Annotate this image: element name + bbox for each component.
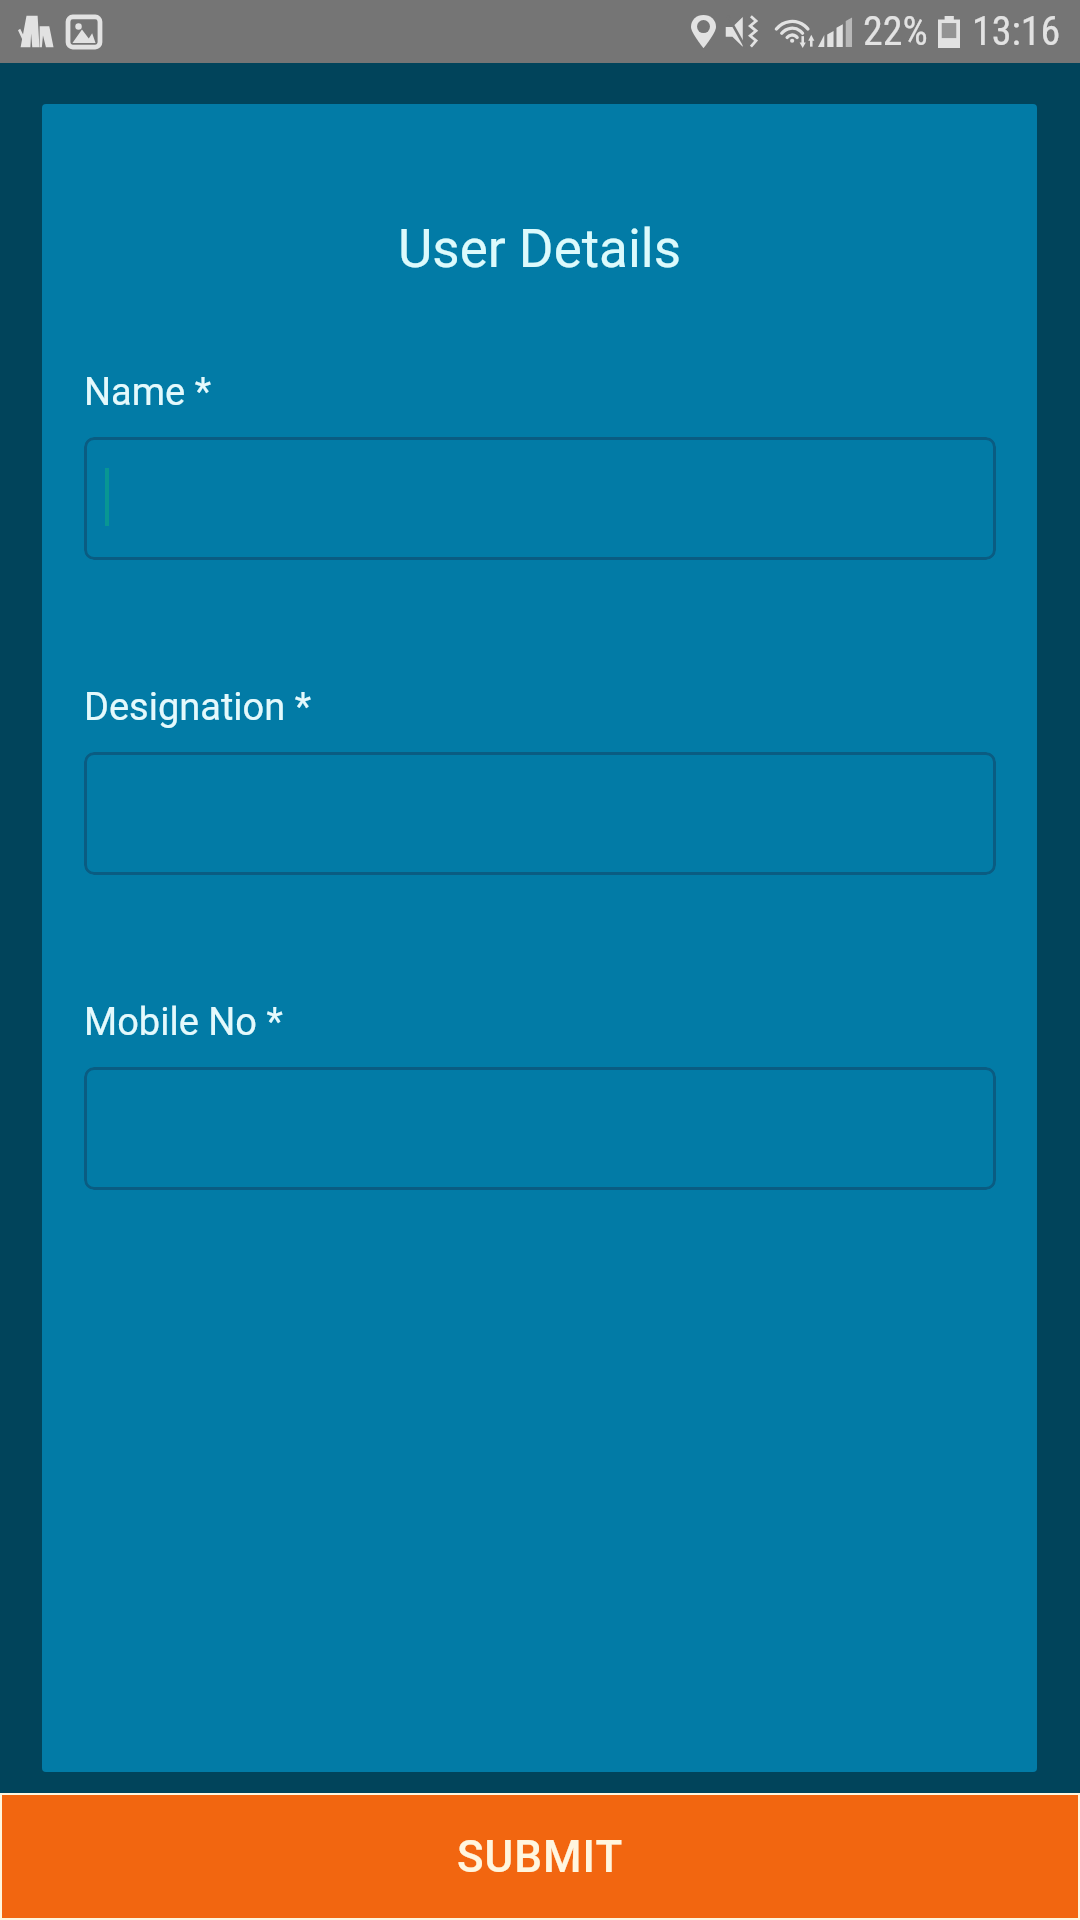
other: Wi-Fi connected: [773, 15, 817, 48]
other: Sound muted, vibrate: [725, 15, 762, 48]
staticText: User Details: [42, 218, 1037, 280]
other: Mobile signal: [818, 17, 852, 47]
other: Screenshot captured: [67, 16, 101, 48]
button[interactable]: [84, 437, 996, 560]
button[interactable]: [84, 752, 996, 875]
staticText: 13:16: [972, 8, 1061, 55]
staticText: Name *: [84, 370, 212, 415]
other: Location on: [691, 15, 716, 48]
staticText: Designation *: [84, 685, 312, 730]
button[interactable]: [84, 1067, 996, 1190]
other: Battery 22 percent: [938, 16, 960, 48]
other: App notification: [18, 15, 55, 48]
button[interactable]: SUBMIT: [2, 1795, 1078, 1918]
staticText: 22%: [863, 8, 928, 55]
staticText: Mobile No *: [84, 1000, 283, 1045]
staticText: SUBMIT: [457, 1831, 624, 1883]
